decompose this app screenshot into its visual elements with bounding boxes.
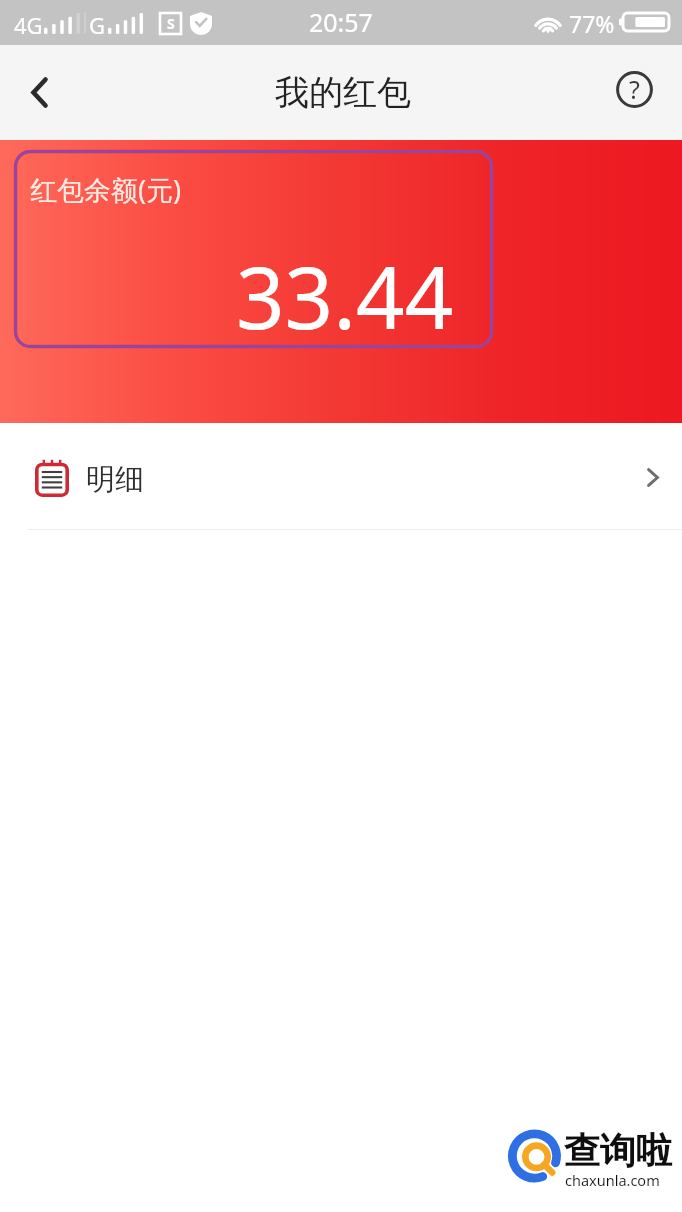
staticText: 查询啦 — [564, 1128, 672, 1173]
button[interactable]: Back — [0, 45, 78, 140]
staticText: 明细 — [86, 461, 144, 498]
staticText: 我的红包 — [275, 71, 411, 114]
staticText: 33.44 — [236, 238, 454, 354]
staticText: 20:57 — [309, 5, 373, 39]
button[interactable]: Help — [602, 45, 682, 140]
staticText: 红包余额(元) — [30, 171, 182, 208]
staticText: ? — [629, 72, 640, 106]
staticText: chaxunla.com — [565, 1170, 660, 1190]
staticText: 4G — [14, 10, 43, 40]
staticText: 77% — [569, 8, 615, 39]
button[interactable]: 明细 — [0, 423, 682, 529]
staticText: S — [167, 14, 175, 33]
staticText: G — [89, 10, 106, 40]
